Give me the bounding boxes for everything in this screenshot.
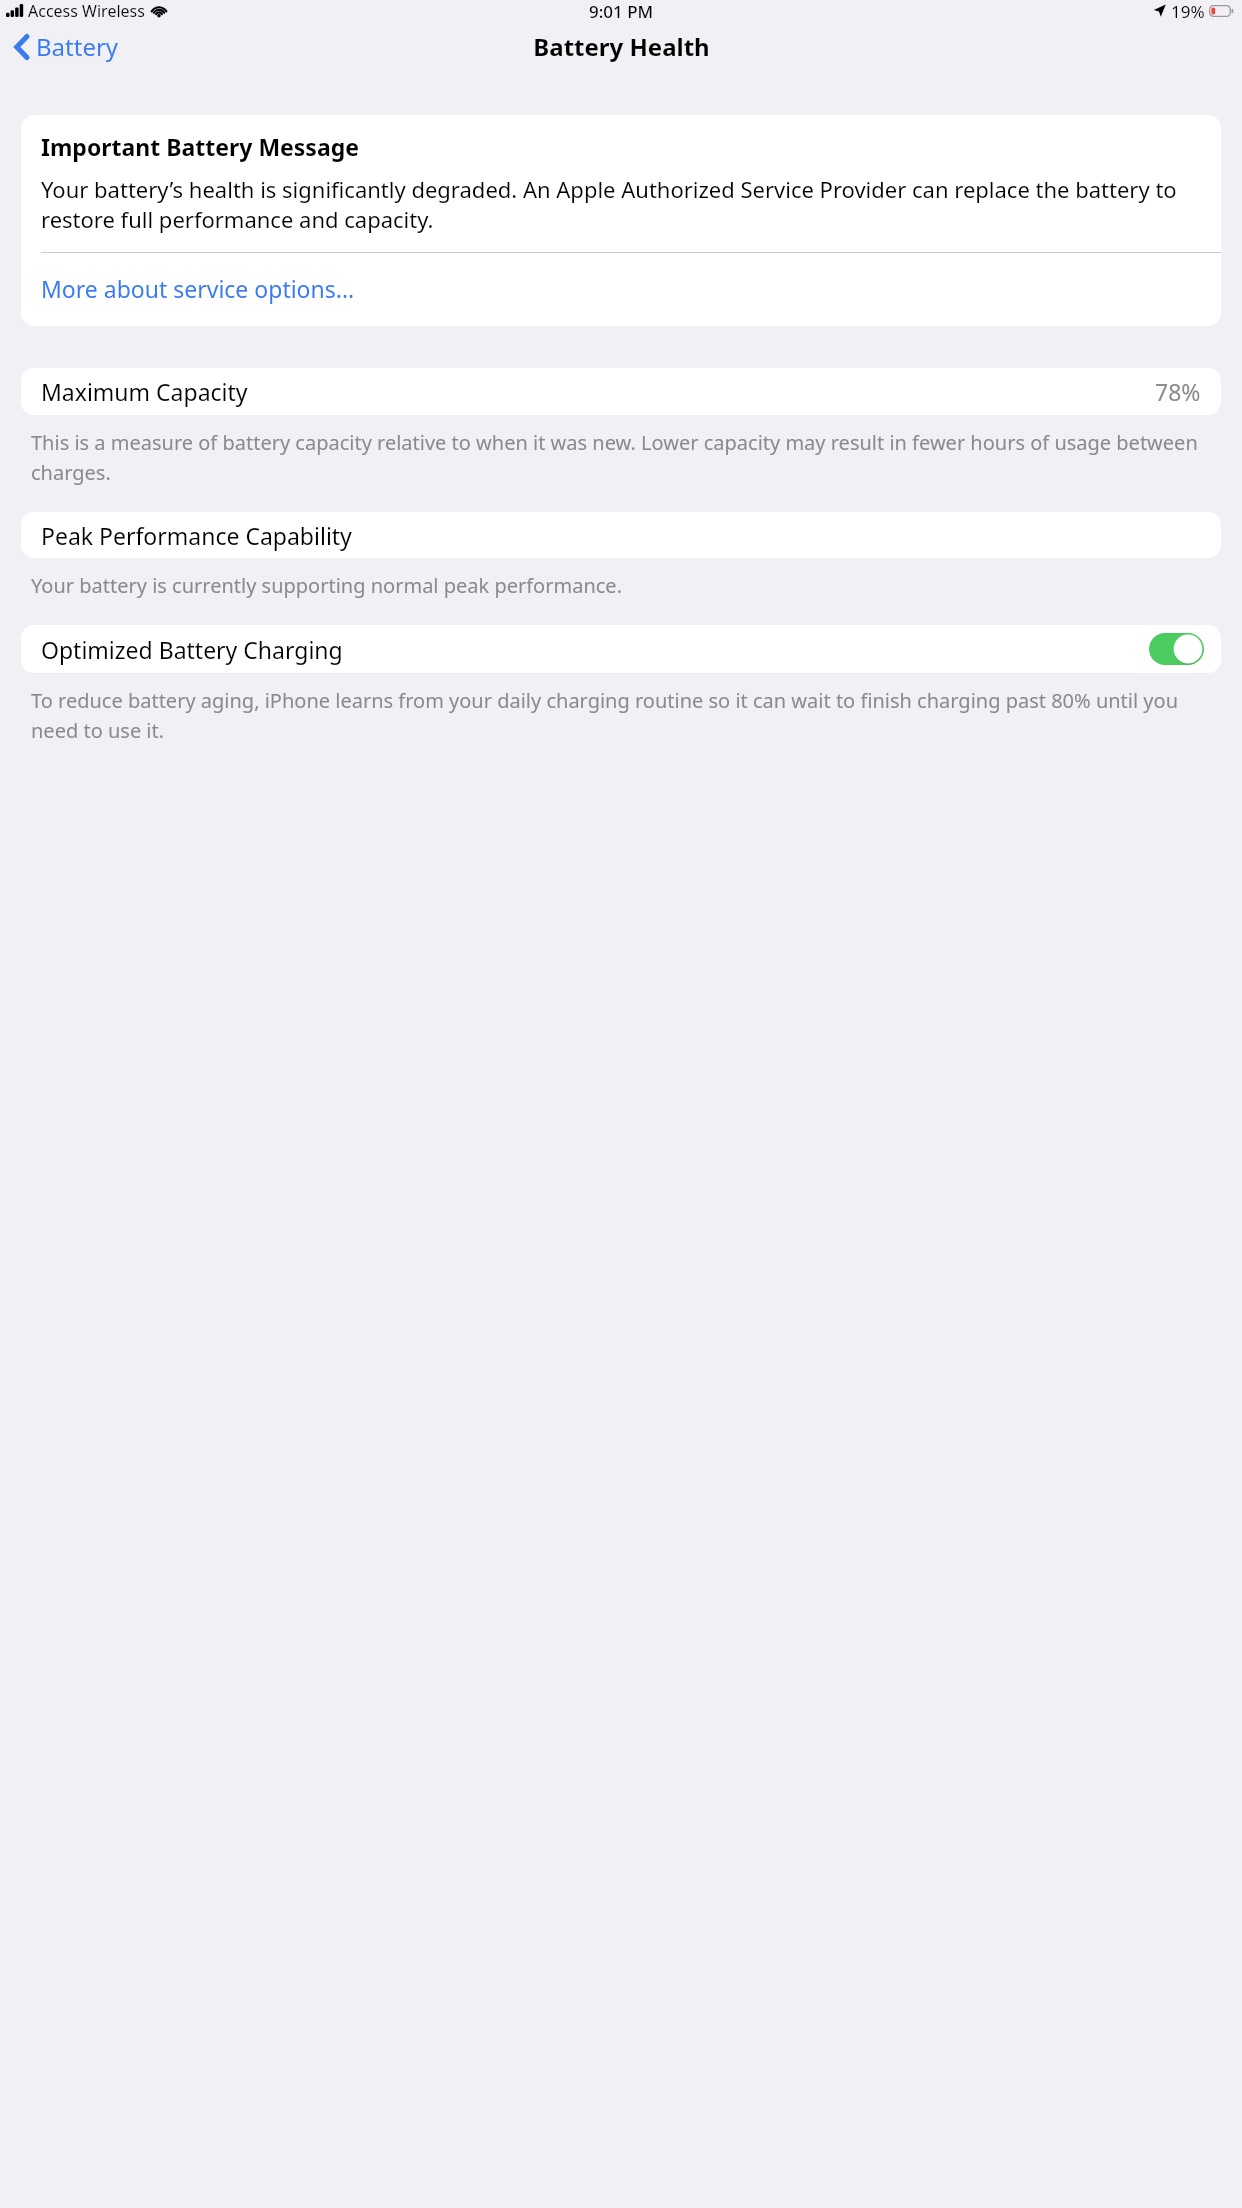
button[interactable]: Back bbox=[0, 24, 133, 69]
staticText: 9:01 PM bbox=[589, 0, 654, 21]
staticText: Access Wireless bbox=[28, 0, 145, 21]
staticText: This is a measure of battery capacity re… bbox=[31, 429, 1212, 486]
button[interactable]: Maximum Capacity bbox=[21, 368, 1221, 415]
button[interactable]: More about service options... bbox=[21, 253, 1221, 326]
staticText: Maximum Capacity bbox=[41, 376, 248, 407]
button[interactable]: Optimized Battery Charging toggle bbox=[1149, 633, 1204, 665]
staticText: Your battery’s health is significantly d… bbox=[41, 174, 1203, 234]
staticText: Important Battery Message bbox=[41, 131, 359, 162]
staticText: 19% bbox=[1171, 0, 1205, 21]
button[interactable]: Peak Performance Capability bbox=[21, 512, 1221, 558]
staticText: More about service options... bbox=[41, 273, 355, 304]
staticText: Battery bbox=[36, 30, 119, 63]
staticText: To reduce battery aging, iPhone learns f… bbox=[31, 687, 1212, 744]
staticText: Peak Performance Capability bbox=[41, 520, 352, 551]
staticText: 78% bbox=[1155, 376, 1201, 407]
staticText: Optimized Battery Charging bbox=[41, 634, 343, 665]
staticText: Battery Health bbox=[533, 30, 710, 63]
staticText: Your battery is currently supporting nor… bbox=[31, 572, 1212, 599]
other: Back bbox=[14, 34, 29, 60]
